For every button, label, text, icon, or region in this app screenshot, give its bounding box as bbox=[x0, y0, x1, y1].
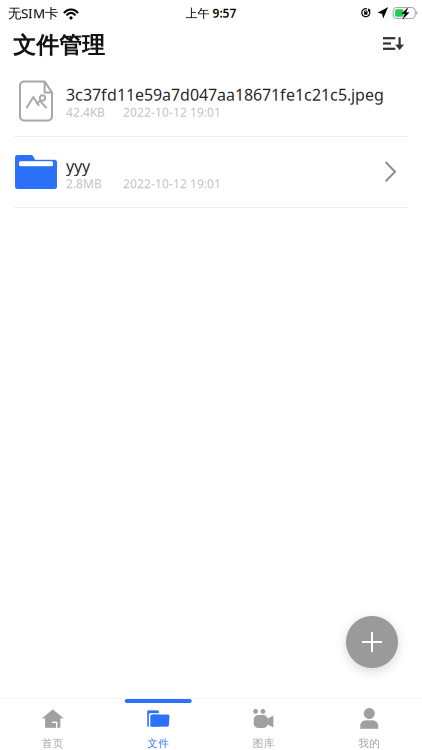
button[interactable]: Add bbox=[346, 616, 398, 668]
staticText: 上午 9:57 bbox=[185, 5, 236, 21]
button[interactable]: Sort bbox=[377, 34, 410, 59]
staticText: 图库 bbox=[253, 737, 275, 750]
staticText: 42.4KB bbox=[66, 104, 105, 120]
button[interactable]: 图库 bbox=[211, 699, 316, 750]
staticText: 无SIM卡 bbox=[8, 4, 58, 22]
button[interactable]: 3c37fd11e59a7d047aa18671fe1c21c5.jpeg bbox=[0, 67, 422, 137]
staticText: 2022-10-12 19:01 bbox=[123, 104, 221, 120]
button[interactable]: yyy bbox=[0, 137, 422, 208]
staticText: 文件管理 bbox=[13, 32, 105, 59]
staticText: 2022-10-12 19:01 bbox=[123, 176, 221, 192]
button[interactable]: 我的 bbox=[316, 699, 422, 750]
staticText: 2.8MB bbox=[66, 176, 102, 192]
staticText: 文件 bbox=[147, 737, 169, 750]
staticText: yyy bbox=[66, 155, 90, 177]
button[interactable]: 首页 bbox=[0, 699, 105, 750]
button[interactable]: 文件 bbox=[105, 699, 211, 750]
staticText: 我的 bbox=[358, 737, 380, 750]
staticText: 首页 bbox=[42, 737, 64, 750]
staticText: 3c37fd11e59a7d047aa18671fe1c21c5.jpeg bbox=[66, 84, 384, 105]
